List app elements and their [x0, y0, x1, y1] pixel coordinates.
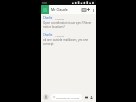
button[interactable]: Your profile — [43, 94, 49, 100]
staticText: ok one outside mailboxes, yes one concep… — [43, 38, 94, 46]
button[interactable]: Charlie — [41, 15, 96, 30]
staticText: 1:04 PM — [55, 17, 64, 20]
staticText: Mr Claude — [51, 7, 68, 12]
button[interactable]: Attach image — [84, 95, 89, 100]
button[interactable]: Back to conversations — [41, 5, 49, 14]
staticText: Message Mr Claude — [56, 96, 80, 99]
button[interactable]: Charlie — [41, 32, 96, 47]
button[interactable]: New — [86, 7, 91, 12]
staticText: Charlie — [43, 16, 53, 20]
button[interactable]: Video call — [81, 7, 86, 12]
button[interactable]: Message Mr Claude — [51, 94, 82, 100]
staticText: Charlie — [43, 33, 53, 37]
button[interactable]: Mr Claude — [51, 7, 81, 12]
staticText: Open coordination issue sync? Never noti… — [43, 21, 94, 29]
staticText: 1:05 PM — [55, 34, 64, 37]
button[interactable]: More options — [91, 8, 95, 12]
button[interactable]: Send — [89, 95, 94, 100]
